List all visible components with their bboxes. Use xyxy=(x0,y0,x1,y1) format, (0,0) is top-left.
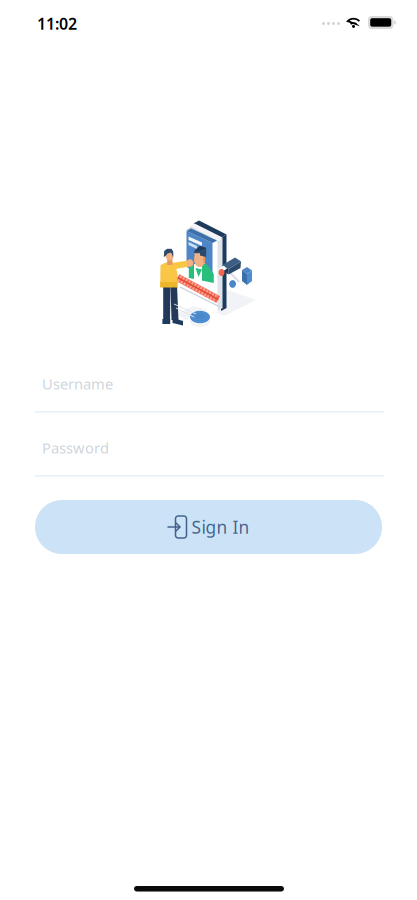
staticText: Sign In xyxy=(191,515,249,538)
button[interactable]: Sign In xyxy=(35,500,382,554)
staticText: 11:02 xyxy=(37,13,77,34)
staticText: Password xyxy=(42,438,109,457)
staticText: Username xyxy=(42,374,113,393)
